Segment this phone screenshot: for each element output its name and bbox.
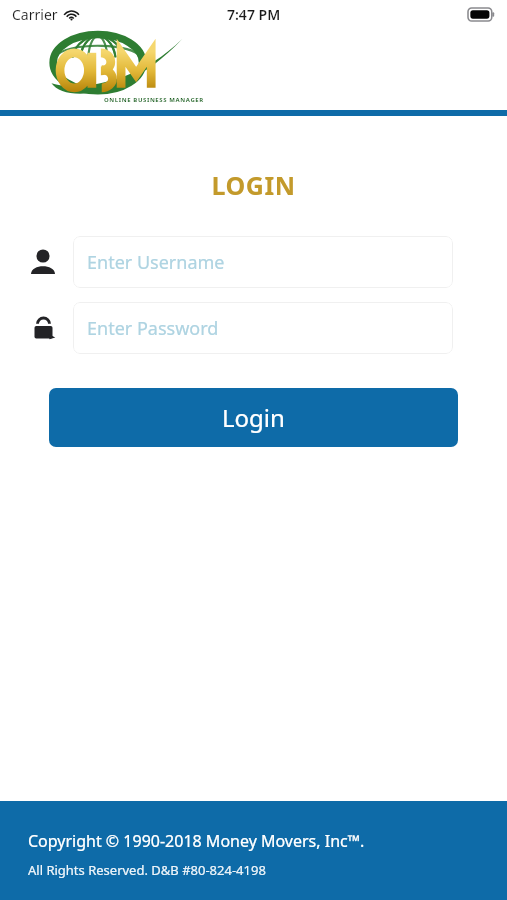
- staticText: Copyright © 1990-2018 Money Movers, Inc™…: [28, 830, 365, 852]
- staticText: Login: [222, 401, 285, 434]
- other: OBM Online Business Manager logo: [48, 30, 220, 106]
- other: Password: [31, 316, 56, 341]
- button[interactable]: Enter Password: [73, 302, 453, 354]
- staticText: Enter Username: [87, 250, 225, 275]
- staticText: 7:47 PM: [227, 5, 281, 24]
- other: Username: [29, 248, 57, 276]
- button[interactable]: Login: [49, 388, 458, 447]
- button[interactable]: Enter Username: [73, 236, 453, 288]
- staticText: ONLINE BUSINESS MANAGER: [104, 96, 204, 104]
- staticText: LOGIN: [0, 168, 507, 202]
- staticText: Carrier: [12, 5, 58, 24]
- staticText: Enter Password: [87, 316, 219, 341]
- staticText: All Rights Reserved. D&B #80-824-4198: [28, 861, 266, 879]
